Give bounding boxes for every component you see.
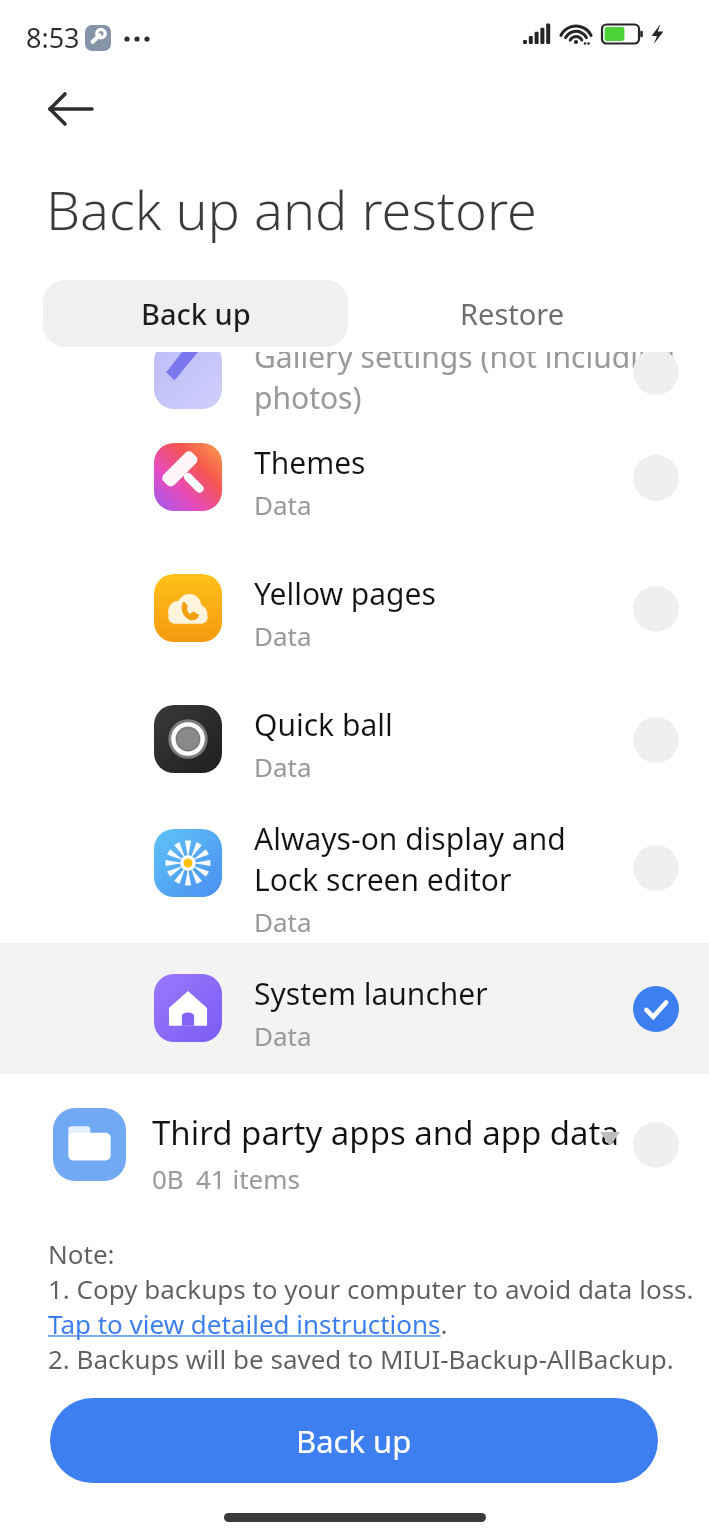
staticText: Quick ball	[254, 704, 393, 745]
staticText: Restore	[460, 294, 565, 333]
staticText: Data	[254, 1018, 312, 1053]
staticText: Data	[254, 487, 312, 522]
staticText: Data	[254, 618, 312, 653]
button[interactable]: Restore	[360, 280, 665, 347]
button[interactable]: Always-on display and Lock screen editor	[0, 800, 709, 935]
staticText: Note:	[48, 1236, 115, 1271]
button[interactable]: Themes	[0, 412, 709, 543]
staticText: Back up and restore	[46, 172, 537, 246]
staticText: 41 items	[196, 1161, 301, 1196]
staticText: Themes	[254, 442, 366, 483]
button[interactable]: System launcher	[0, 943, 709, 1074]
staticText: Back up	[296, 1420, 412, 1462]
staticText: Data	[254, 904, 312, 939]
staticText: 1. Copy backups to your computer to avoi…	[48, 1271, 694, 1306]
staticText: Data	[254, 749, 312, 784]
staticText: Back up	[141, 294, 251, 333]
staticText: 8:53	[26, 19, 80, 56]
button[interactable]: Yellow pages	[0, 543, 709, 674]
staticText: Always-on display and Lock screen editor	[254, 818, 566, 900]
button[interactable]: Back	[30, 83, 94, 135]
button[interactable]: Third party apps and app data	[0, 1082, 709, 1208]
staticText: System launcher	[254, 973, 488, 1014]
button[interactable]: Gallery settings (not including photos)	[0, 352, 709, 437]
staticText: 0B	[152, 1161, 184, 1196]
staticText: Gallery settings (not including photos)	[254, 352, 675, 418]
staticText: 2. Backups will be saved to MIUI-Backup-…	[48, 1341, 674, 1376]
staticText: Tap to view detailed instructions.	[48, 1306, 448, 1341]
button[interactable]: Quick ball	[0, 674, 709, 805]
staticText: Yellow pages	[254, 573, 436, 614]
staticText: Third party apps and app data	[152, 1110, 620, 1155]
button[interactable]: Tap to view detailed instructions.	[48, 1306, 448, 1341]
button[interactable]: Back up	[43, 280, 348, 347]
button[interactable]: Back up	[50, 1398, 658, 1483]
